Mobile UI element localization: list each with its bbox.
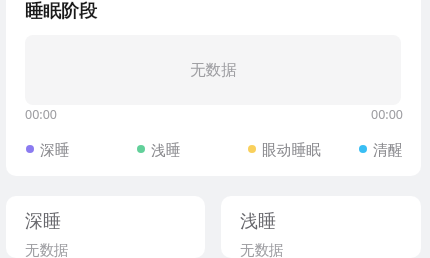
staticText: 深睡 [40,141,70,157]
staticText: 清醒 [373,141,403,157]
staticText: 00:00 [25,106,57,123]
staticText: 深睡 [25,210,61,233]
button[interactable]: 浅睡 [221,196,421,258]
button[interactable]: 深睡 [6,196,205,258]
staticText: 无数据 [240,241,284,258]
button[interactable]: 眼动睡眠 [248,141,321,157]
staticText: 浅睡 [240,210,276,233]
button[interactable]: 清醒 [359,141,403,157]
button[interactable]: 浅睡 [137,141,181,157]
button[interactable]: 睡眠阶段 [6,0,421,176]
button[interactable]: 深睡 [26,141,70,157]
staticText: 无数据 [25,241,69,258]
staticText: 眼动睡眠 [262,141,321,157]
staticText: 无数据 [190,60,237,80]
staticText: 00:00 [371,106,403,123]
staticText: 睡眠阶段 [25,0,97,23]
staticText: 浅睡 [151,141,181,157]
